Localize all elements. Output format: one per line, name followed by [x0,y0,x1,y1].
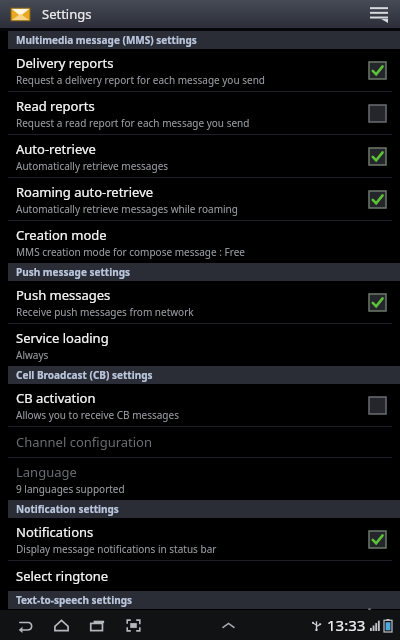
button[interactable]: Notifications [0,518,400,560]
button[interactable]: Back [12,612,38,638]
staticText: 9 languages supported [16,482,125,496]
button[interactable]: Channel configuration [0,427,400,457]
button[interactable]: Screenshot [120,612,146,638]
staticText: Automatically retrieve messages [16,159,169,173]
button[interactable]: Checked [369,191,386,208]
staticText: Display message notifications in status … [16,542,217,556]
button[interactable]: Messaging app icon [8,2,32,26]
button[interactable]: Unchecked [369,397,386,414]
button[interactable]: Roaming auto-retrieve [0,178,400,220]
staticText: Request a read report for each message y… [16,116,250,130]
staticText: Auto-retrieve [16,140,96,158]
button[interactable]: Select ringtone [0,561,400,591]
staticText: Text-to-speech settings [16,593,132,607]
button[interactable]: Home [48,612,74,638]
button[interactable]: More options [366,1,392,27]
staticText: Roaming auto-retrieve [16,183,154,201]
button[interactable]: Checked [369,148,386,165]
button[interactable]: Language [0,458,400,500]
staticText: CB activation [16,389,96,407]
button[interactable]: Push messages [0,281,400,323]
staticText: Channel configuration [16,433,153,451]
button[interactable]: Unchecked [369,105,386,122]
button[interactable]: Read out new message notification [0,609,400,610]
staticText: Delivery reports [16,54,114,72]
staticText: Select ringtone [16,567,109,585]
button[interactable]: Notifications [217,614,239,636]
button[interactable]: Auto-retrieve [0,135,400,177]
staticText: Request a delivery report for each messa… [16,73,265,87]
staticText: Multimedia message (MMS) settings [16,33,197,47]
staticText: Allows you to receive CB messages [16,408,179,422]
staticText: Creation mode [16,226,107,244]
staticText: Notifications [16,523,94,541]
staticText: Service loading [16,329,109,347]
staticText: Language [16,463,77,481]
button[interactable]: CB activation [0,384,400,426]
staticText: Automatically retrieve messages while ro… [16,202,238,216]
staticText: MMS creation mode for compose message : … [16,245,245,259]
staticText: Push message settings [16,265,130,279]
staticText: Read reports [16,97,95,115]
button[interactable]: Creation mode [0,221,400,263]
button[interactable]: Unchecked [369,609,386,610]
staticText: Always [16,348,49,362]
staticText: Notification settings [16,502,119,516]
staticText: Cell Broadcast (CB) settings [16,368,153,382]
staticText: Push messages [16,286,111,304]
button[interactable]: Service loading [0,324,400,366]
staticText: Settings [42,5,92,23]
button[interactable]: Checked [369,62,386,79]
button[interactable]: Checked [369,294,386,311]
button[interactable]: Recent apps [84,612,110,638]
staticText: Receive push messages from network [16,305,194,319]
button[interactable]: Read reports [0,92,400,134]
button[interactable]: 13:33 [310,615,392,635]
button[interactable]: Checked [369,531,386,548]
button[interactable]: Delivery reports [0,49,400,91]
staticText: 13:33 [327,615,366,635]
